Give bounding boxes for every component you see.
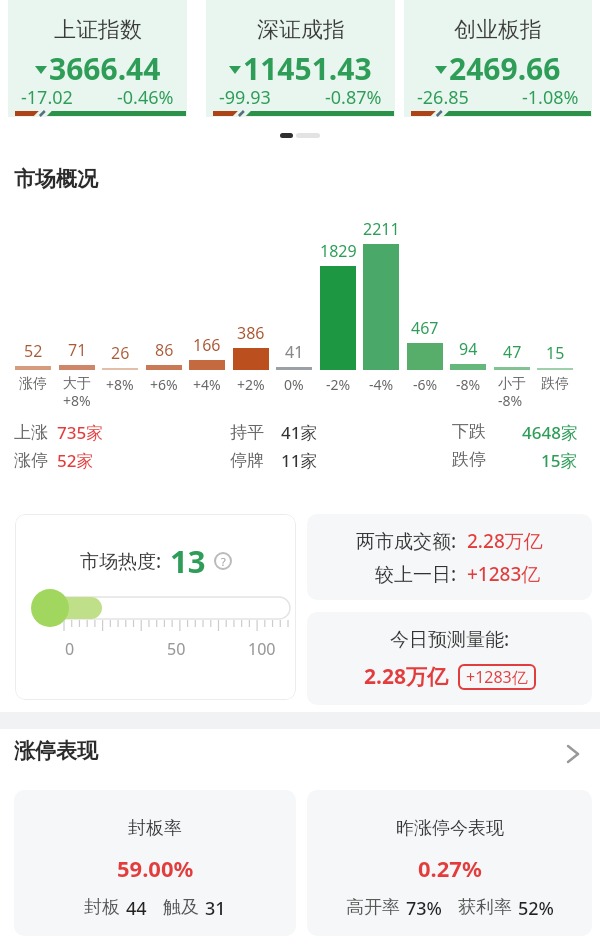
button[interactable]: 封板率 bbox=[14, 790, 296, 936]
staticText: -99.93 bbox=[219, 85, 271, 110]
staticText: 52家 bbox=[57, 449, 94, 472]
button[interactable]: 两市成交额: bbox=[307, 514, 592, 600]
staticText: -17.02 bbox=[21, 85, 73, 110]
staticText: 市场热度: bbox=[80, 548, 162, 574]
button[interactable]: 上证指数 bbox=[8, 0, 187, 117]
staticText: 15家 bbox=[541, 449, 578, 472]
staticText: 11451.43 bbox=[243, 48, 372, 89]
staticText: 持平 bbox=[230, 422, 264, 443]
button[interactable]: 涨停表现 bbox=[0, 738, 600, 770]
staticText: 50 bbox=[167, 638, 186, 660]
staticText: 今日预测量能: bbox=[390, 626, 510, 652]
staticText: 31 bbox=[205, 896, 226, 921]
staticText: 52% bbox=[518, 896, 554, 921]
button[interactable]: 市场热度: bbox=[15, 514, 296, 700]
staticText: 上涨 bbox=[14, 422, 48, 443]
staticText: 创业板指 bbox=[454, 16, 542, 44]
staticText: 735家 bbox=[57, 421, 104, 444]
staticText: 166 bbox=[193, 334, 221, 356]
button[interactable]: 今日预测量能: bbox=[307, 612, 592, 705]
button[interactable]: 深证成指 bbox=[206, 0, 395, 117]
staticText: 高开率 bbox=[346, 896, 400, 919]
staticText: -8% bbox=[456, 375, 481, 394]
staticText: +4% bbox=[193, 375, 221, 394]
staticText: 71 bbox=[68, 339, 87, 361]
button[interactable]: 创业板指 bbox=[404, 0, 592, 117]
staticText: 467 bbox=[411, 317, 439, 339]
staticText: +1283亿 bbox=[467, 561, 541, 587]
staticText: 触及 bbox=[163, 896, 199, 919]
staticText: 41 bbox=[285, 341, 304, 363]
staticText: +2% bbox=[237, 375, 265, 394]
staticText: 较上一日: bbox=[375, 561, 457, 587]
staticText: 0% bbox=[284, 375, 304, 394]
staticText: 0 bbox=[65, 638, 75, 660]
staticText: 两市成交额: bbox=[356, 528, 457, 554]
staticText: 涨停表现 bbox=[14, 738, 98, 764]
staticText: 44 bbox=[126, 896, 147, 921]
staticText: 73% bbox=[406, 896, 442, 921]
staticText: ? bbox=[221, 554, 226, 569]
staticText: 上证指数 bbox=[54, 16, 142, 44]
staticText: 停牌 bbox=[230, 450, 264, 471]
staticText: 2211 bbox=[363, 218, 400, 240]
staticText: +6% bbox=[150, 375, 178, 394]
staticText: 市场概况 bbox=[14, 166, 98, 192]
staticText: 4648家 bbox=[522, 421, 578, 444]
staticText: 昨涨停今表现 bbox=[396, 817, 504, 840]
staticText: 100 bbox=[248, 638, 276, 660]
staticText: 26 bbox=[111, 342, 130, 364]
staticText: 涨停 bbox=[19, 375, 47, 393]
staticText: +1283亿 bbox=[466, 666, 528, 688]
staticText: 2.28万亿 bbox=[364, 662, 448, 691]
staticText: 94 bbox=[459, 338, 478, 360]
staticText: -26.85 bbox=[417, 85, 469, 110]
staticText: 大于 +8% bbox=[63, 375, 91, 410]
staticText: 封板率 bbox=[128, 817, 182, 840]
staticText: 59.00% bbox=[117, 853, 194, 883]
staticText: 0.27% bbox=[418, 853, 482, 883]
staticText: 涨停 bbox=[14, 450, 48, 471]
staticText: 深证成指 bbox=[257, 16, 345, 44]
staticText: 41家 bbox=[281, 421, 318, 444]
staticText: 47 bbox=[503, 341, 522, 363]
staticText: 跌停 bbox=[541, 375, 569, 393]
staticText: 下跌 bbox=[452, 421, 486, 442]
staticText: 386 bbox=[237, 322, 265, 344]
staticText: 1829 bbox=[320, 240, 357, 262]
staticText: 52 bbox=[24, 340, 43, 362]
staticText: 13 bbox=[170, 540, 206, 582]
staticText: -4% bbox=[369, 375, 394, 394]
staticText: 封板 bbox=[84, 896, 120, 919]
staticText: 2469.66 bbox=[449, 48, 561, 89]
staticText: 15 bbox=[546, 342, 565, 364]
staticText: -1.08% bbox=[522, 85, 579, 110]
staticText: 跌停 bbox=[452, 449, 486, 470]
staticText: 86 bbox=[155, 339, 174, 361]
staticText: -0.87% bbox=[325, 85, 382, 110]
staticText: -2% bbox=[326, 375, 351, 394]
staticText: 2.28万亿 bbox=[467, 528, 543, 554]
staticText: 获利率 bbox=[458, 896, 512, 919]
staticText: 11家 bbox=[281, 449, 318, 472]
staticText: 3666.44 bbox=[49, 48, 161, 89]
button[interactable]: 昨涨停今表现 bbox=[307, 790, 592, 936]
staticText: -6% bbox=[413, 375, 438, 394]
staticText: -0.46% bbox=[117, 85, 174, 110]
staticText: 小于 -8% bbox=[498, 375, 526, 410]
staticText: +8% bbox=[106, 375, 134, 394]
